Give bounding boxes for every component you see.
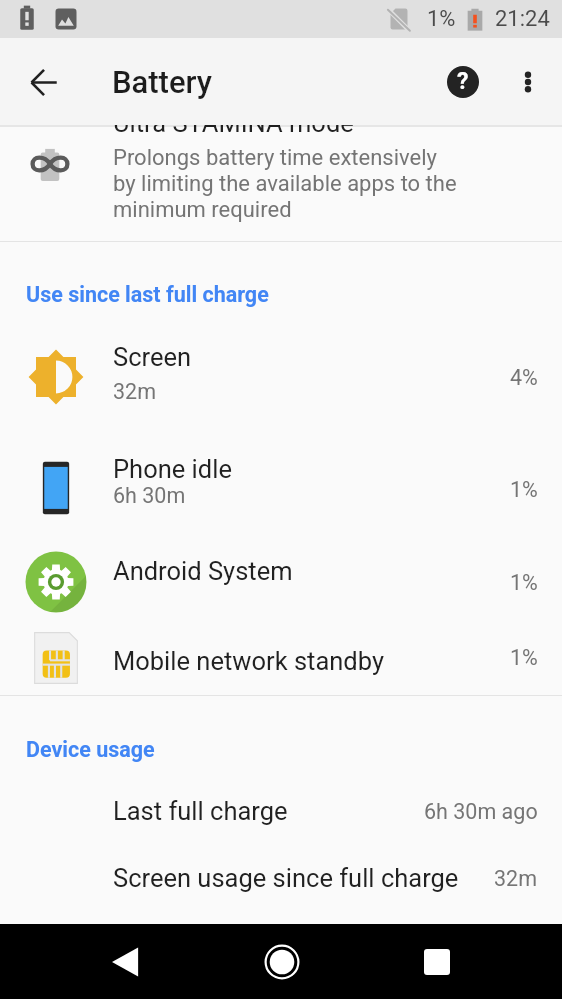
button[interactable]: Back [99,936,151,988]
button[interactable]: Screen usage since full charge [0,841,562,903]
staticText: 6h 30m [113,483,186,508]
button[interactable]: Help [437,56,489,108]
staticText: 6h 30m ago [424,799,538,824]
staticText: Ultra STAMINA mode [113,125,354,138]
button[interactable]: Mobile network standby [0,574,562,646]
staticText: Phone idle [113,454,232,484]
staticText: 1% [427,6,456,32]
button[interactable]: Home [256,936,308,988]
staticText: Use since last full charge [26,282,269,307]
staticText: Screen usage since full charge [113,863,459,893]
staticText: 1% [510,645,538,670]
staticText: Battery [112,64,212,100]
staticText: ? [457,68,469,95]
staticText: Android System [113,556,293,586]
button[interactable]: Android System [0,498,562,574]
button[interactable]: Back [18,57,68,107]
staticText: Screen [113,342,192,372]
staticText: 21:24 [495,6,550,32]
button[interactable]: Recent apps [411,936,463,988]
button[interactable]: Ultra STAMINA mode [0,125,562,241]
staticText: Prolongs battery time extensively by lim… [113,145,457,223]
staticText: 4% [510,365,538,390]
button[interactable]: Last full charge [0,774,562,836]
button[interactable]: Phone idle [0,414,562,498]
staticText: 32m [494,866,538,891]
staticText: Last full charge [113,796,288,826]
staticText: 1% [510,477,538,502]
staticText: 1% [510,570,538,595]
button[interactable]: More options [504,58,552,106]
staticText: Device usage [26,737,155,762]
button[interactable]: Screen [0,330,562,414]
staticText: 32m [113,379,157,404]
staticText: Mobile network standby [113,646,384,676]
